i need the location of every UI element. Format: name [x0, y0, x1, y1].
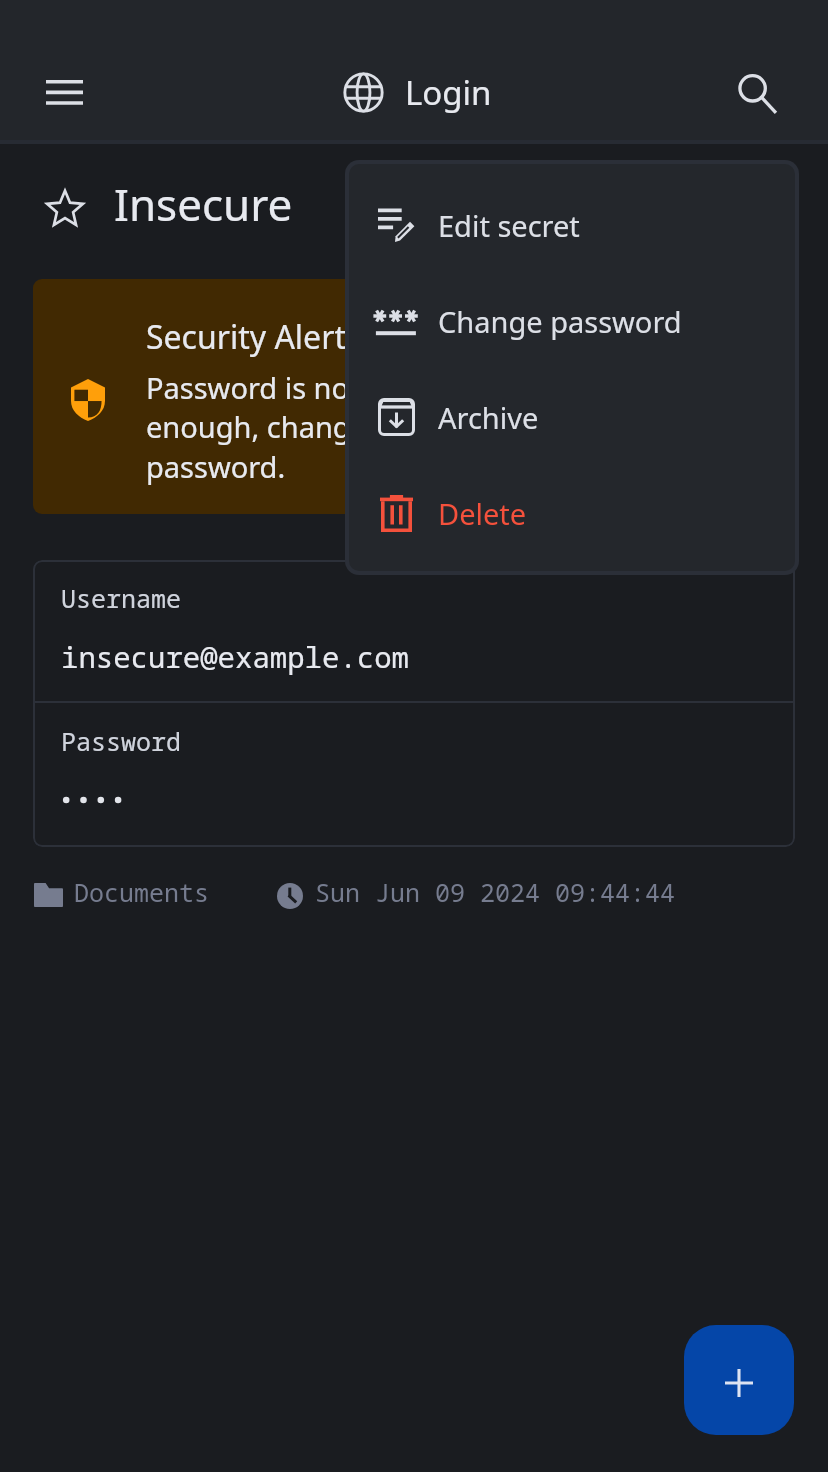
staticText: Insecure: [114, 174, 293, 234]
button[interactable]: Delete: [349, 465, 795, 561]
staticText: Edit secret: [438, 206, 580, 245]
staticText: Login: [405, 70, 492, 115]
staticText: Password is not secure enough, change yo…: [146, 368, 538, 486]
button[interactable]: Menu: [20, 48, 108, 136]
button[interactable]: Change password: [349, 273, 795, 369]
staticText: Documents: [74, 875, 210, 909]
button[interactable]: Archive: [349, 369, 795, 465]
button[interactable]: Add: [684, 1325, 794, 1435]
button[interactable]: Password: [33, 703, 795, 847]
button[interactable]: Search: [715, 50, 803, 138]
staticText: Delete: [438, 494, 527, 533]
staticText: Change password: [438, 302, 682, 341]
button[interactable]: Username: [33, 560, 795, 701]
button[interactable]: Security Alert: [33, 279, 795, 514]
staticText: Sun Jun 09 2024 09:44:44: [315, 875, 676, 909]
staticText: Password: [61, 724, 182, 758]
staticText: insecure@example.com: [61, 637, 410, 676]
button[interactable]: Favorite: [44, 181, 90, 227]
button[interactable]: Edit secret: [349, 177, 795, 273]
staticText: Security Alert: [146, 315, 346, 359]
staticText: Username: [61, 581, 182, 615]
staticText: Archive: [438, 398, 539, 437]
